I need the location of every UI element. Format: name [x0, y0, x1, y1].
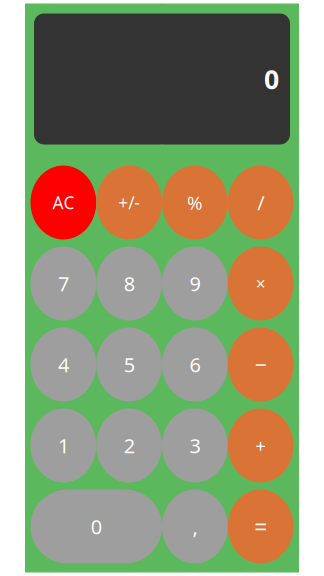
staticText: 6: [189, 351, 200, 378]
button[interactable]: ×: [228, 246, 294, 320]
button[interactable]: +: [228, 408, 294, 482]
button[interactable]: 0: [30, 489, 162, 563]
button[interactable]: 9: [162, 246, 228, 320]
button[interactable]: 8: [96, 246, 162, 320]
staticText: 0: [91, 513, 102, 540]
staticText: 7: [58, 270, 69, 297]
staticText: %: [187, 190, 203, 215]
staticText: 0: [264, 61, 279, 97]
staticText: =: [254, 511, 267, 541]
staticText: ×: [256, 272, 266, 295]
button[interactable]: %: [162, 165, 228, 239]
staticText: 3: [189, 432, 200, 459]
staticText: −: [255, 350, 267, 379]
staticText: 8: [124, 270, 135, 297]
button[interactable]: 2: [96, 408, 162, 482]
button[interactable]: 1: [30, 408, 96, 482]
button[interactable]: /: [228, 165, 294, 239]
staticText: /: [257, 189, 264, 216]
staticText: 2: [124, 432, 135, 459]
button[interactable]: 4: [30, 327, 96, 401]
button[interactable]: AC: [30, 165, 96, 239]
button[interactable]: +/-: [96, 165, 162, 239]
staticText: ,: [192, 513, 197, 540]
button[interactable]: ,: [162, 489, 228, 563]
staticText: +: [255, 433, 266, 458]
staticText: 5: [124, 351, 135, 378]
staticText: 4: [58, 351, 69, 378]
button[interactable]: 7: [30, 246, 96, 320]
staticText: 1: [58, 432, 69, 459]
staticText: 9: [189, 270, 200, 297]
staticText: +/-: [118, 191, 140, 214]
staticText: AC: [52, 191, 74, 214]
button[interactable]: 5: [96, 327, 162, 401]
button[interactable]: −: [228, 327, 294, 401]
button[interactable]: 6: [162, 327, 228, 401]
button[interactable]: 3: [162, 408, 228, 482]
button[interactable]: =: [228, 489, 294, 563]
